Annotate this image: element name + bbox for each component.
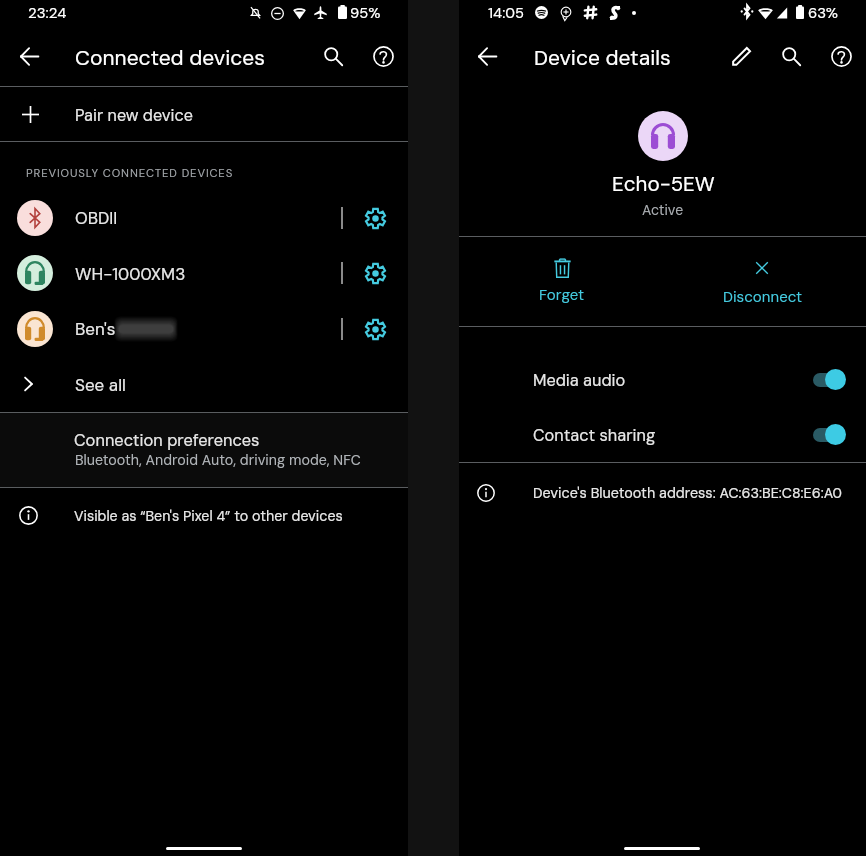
- button[interactable]: [0, 413, 408, 487]
- staticText: Disconnect: [723, 287, 803, 307]
- button[interactable]: Device settings: [351, 305, 399, 353]
- button[interactable]: Help: [821, 36, 862, 77]
- button[interactable]: [459, 237, 662, 326]
- button[interactable]: Device settings: [351, 249, 399, 297]
- staticText: See all: [75, 374, 126, 396]
- button[interactable]: [0, 87, 408, 141]
- button[interactable]: [0, 357, 408, 411]
- staticText: Connection preferences: [74, 430, 260, 451]
- staticText: Forget: [539, 285, 585, 305]
- staticText: Ben's: [75, 318, 116, 340]
- staticText: Visible as “Ben's Pixel 4” to other devi…: [74, 507, 343, 525]
- staticText: 23:24: [28, 3, 67, 22]
- staticText: Media audio: [533, 370, 626, 391]
- button[interactable]: [459, 407, 866, 462]
- button[interactable]: Search: [313, 36, 354, 77]
- staticText: Bluetooth, Android Auto, driving mode, N…: [75, 451, 361, 469]
- button[interactable]: [0, 301, 408, 356]
- button[interactable]: Help: [363, 36, 404, 77]
- staticText: PREVIOUSLY CONNECTED DEVICES: [26, 166, 234, 181]
- staticText: WH-1000XM3: [75, 263, 186, 285]
- staticText: 14:05: [488, 3, 524, 22]
- staticText: Pair new device: [75, 105, 193, 126]
- staticText: 63%: [808, 3, 839, 22]
- staticText: OBDII: [75, 207, 118, 229]
- staticText: Device details: [534, 44, 671, 71]
- staticText: Echo-5EW: [612, 171, 715, 198]
- button[interactable]: Edit: [721, 36, 762, 77]
- button[interactable]: [662, 237, 866, 326]
- staticText: Active: [642, 201, 684, 219]
- staticText: Contact sharing: [533, 425, 656, 446]
- staticText: Connected devices: [75, 44, 265, 71]
- button[interactable]: [0, 190, 408, 245]
- staticText: Device's Bluetooth address: AC:63:BE:C8:…: [533, 484, 842, 503]
- button[interactable]: [0, 246, 408, 301]
- button[interactable]: Search: [771, 36, 812, 77]
- button[interactable]: [459, 352, 866, 407]
- button[interactable]: Device settings: [351, 194, 399, 242]
- button[interactable]: Back: [9, 36, 50, 77]
- staticText: 95%: [350, 3, 381, 22]
- button[interactable]: Back: [467, 36, 508, 77]
